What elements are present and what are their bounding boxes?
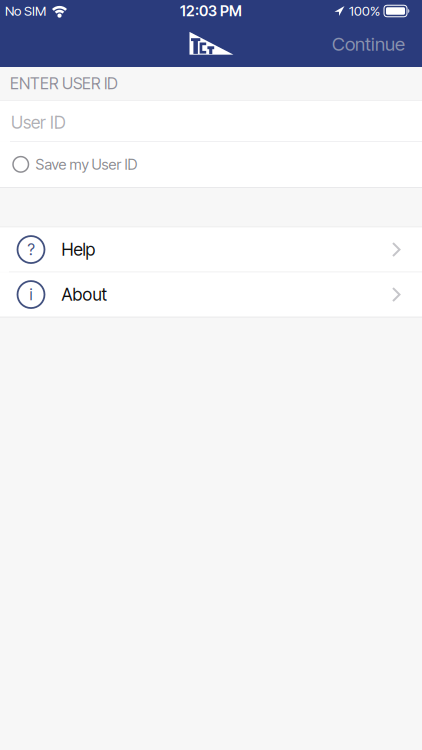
staticText: Help (61, 239, 95, 260)
button[interactable]: i (0, 272, 422, 317)
staticText: i (29, 285, 32, 304)
staticText: About (61, 284, 106, 305)
staticText: Save my User ID (35, 156, 137, 173)
staticText: 12:03 PM (180, 2, 242, 20)
staticText: User ID (11, 112, 66, 132)
staticText: ? (27, 240, 34, 259)
staticText: ENTER USER ID (10, 74, 118, 93)
button[interactable]: User ID text field (0, 101, 422, 141)
staticText: Continue (332, 33, 405, 55)
button[interactable]: Save my User ID (0, 142, 422, 187)
button[interactable]: Continue (332, 33, 405, 55)
button[interactable]: ? (0, 227, 422, 272)
staticText: No SIM (5, 3, 46, 19)
staticText: 100% (349, 3, 380, 19)
